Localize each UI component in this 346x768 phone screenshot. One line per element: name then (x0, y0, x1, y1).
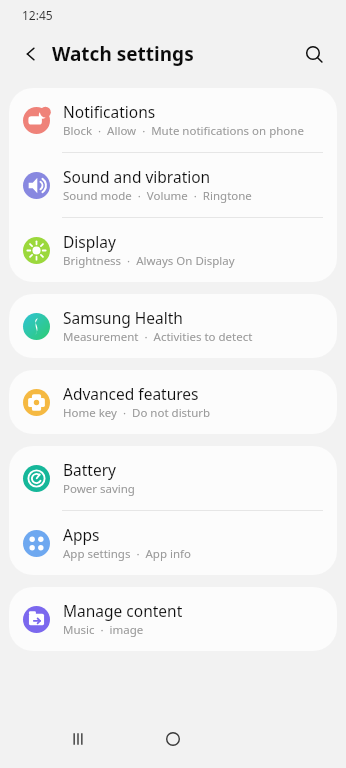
staticText: Home key · Do not disturb (63, 405, 211, 421)
button[interactable]: Manage content (9, 587, 337, 651)
button[interactable]: Back (14, 37, 48, 71)
staticText: 12:45 (22, 7, 53, 23)
staticText: Battery (63, 459, 117, 480)
button[interactable]: Battery (9, 446, 337, 510)
button[interactable]: Apps (9, 511, 337, 575)
staticText: Notifications (63, 101, 156, 122)
button[interactable]: Home (151, 717, 195, 761)
staticText: Advanced features (63, 383, 199, 404)
staticText: Apps (63, 524, 100, 545)
button[interactable]: Recent apps (56, 717, 100, 761)
button[interactable]: Display (9, 218, 337, 282)
staticText: Music · image (63, 622, 144, 638)
staticText: Power saving (63, 481, 135, 497)
staticText: Sound and vibration (63, 166, 211, 187)
button[interactable]: Advanced features (9, 370, 337, 434)
button[interactable]: Notifications (9, 88, 337, 152)
staticText: Display (63, 231, 116, 252)
staticText: Sound mode · Volume · Ringtone (63, 188, 252, 204)
staticText: Watch settings (52, 41, 194, 67)
button[interactable]: Search (296, 36, 332, 72)
staticText: Brightness · Always On Display (63, 253, 235, 269)
staticText: App settings · App info (63, 546, 191, 562)
staticText: Block · Allow · Mute notifications on ph… (63, 123, 304, 139)
staticText: Samsung Health (63, 307, 183, 328)
staticText: Measurement · Activities to detect (63, 329, 253, 345)
staticText: Manage content (63, 600, 183, 621)
button[interactable]: Sound and vibration (9, 153, 337, 217)
button[interactable]: Samsung Health (9, 294, 337, 358)
